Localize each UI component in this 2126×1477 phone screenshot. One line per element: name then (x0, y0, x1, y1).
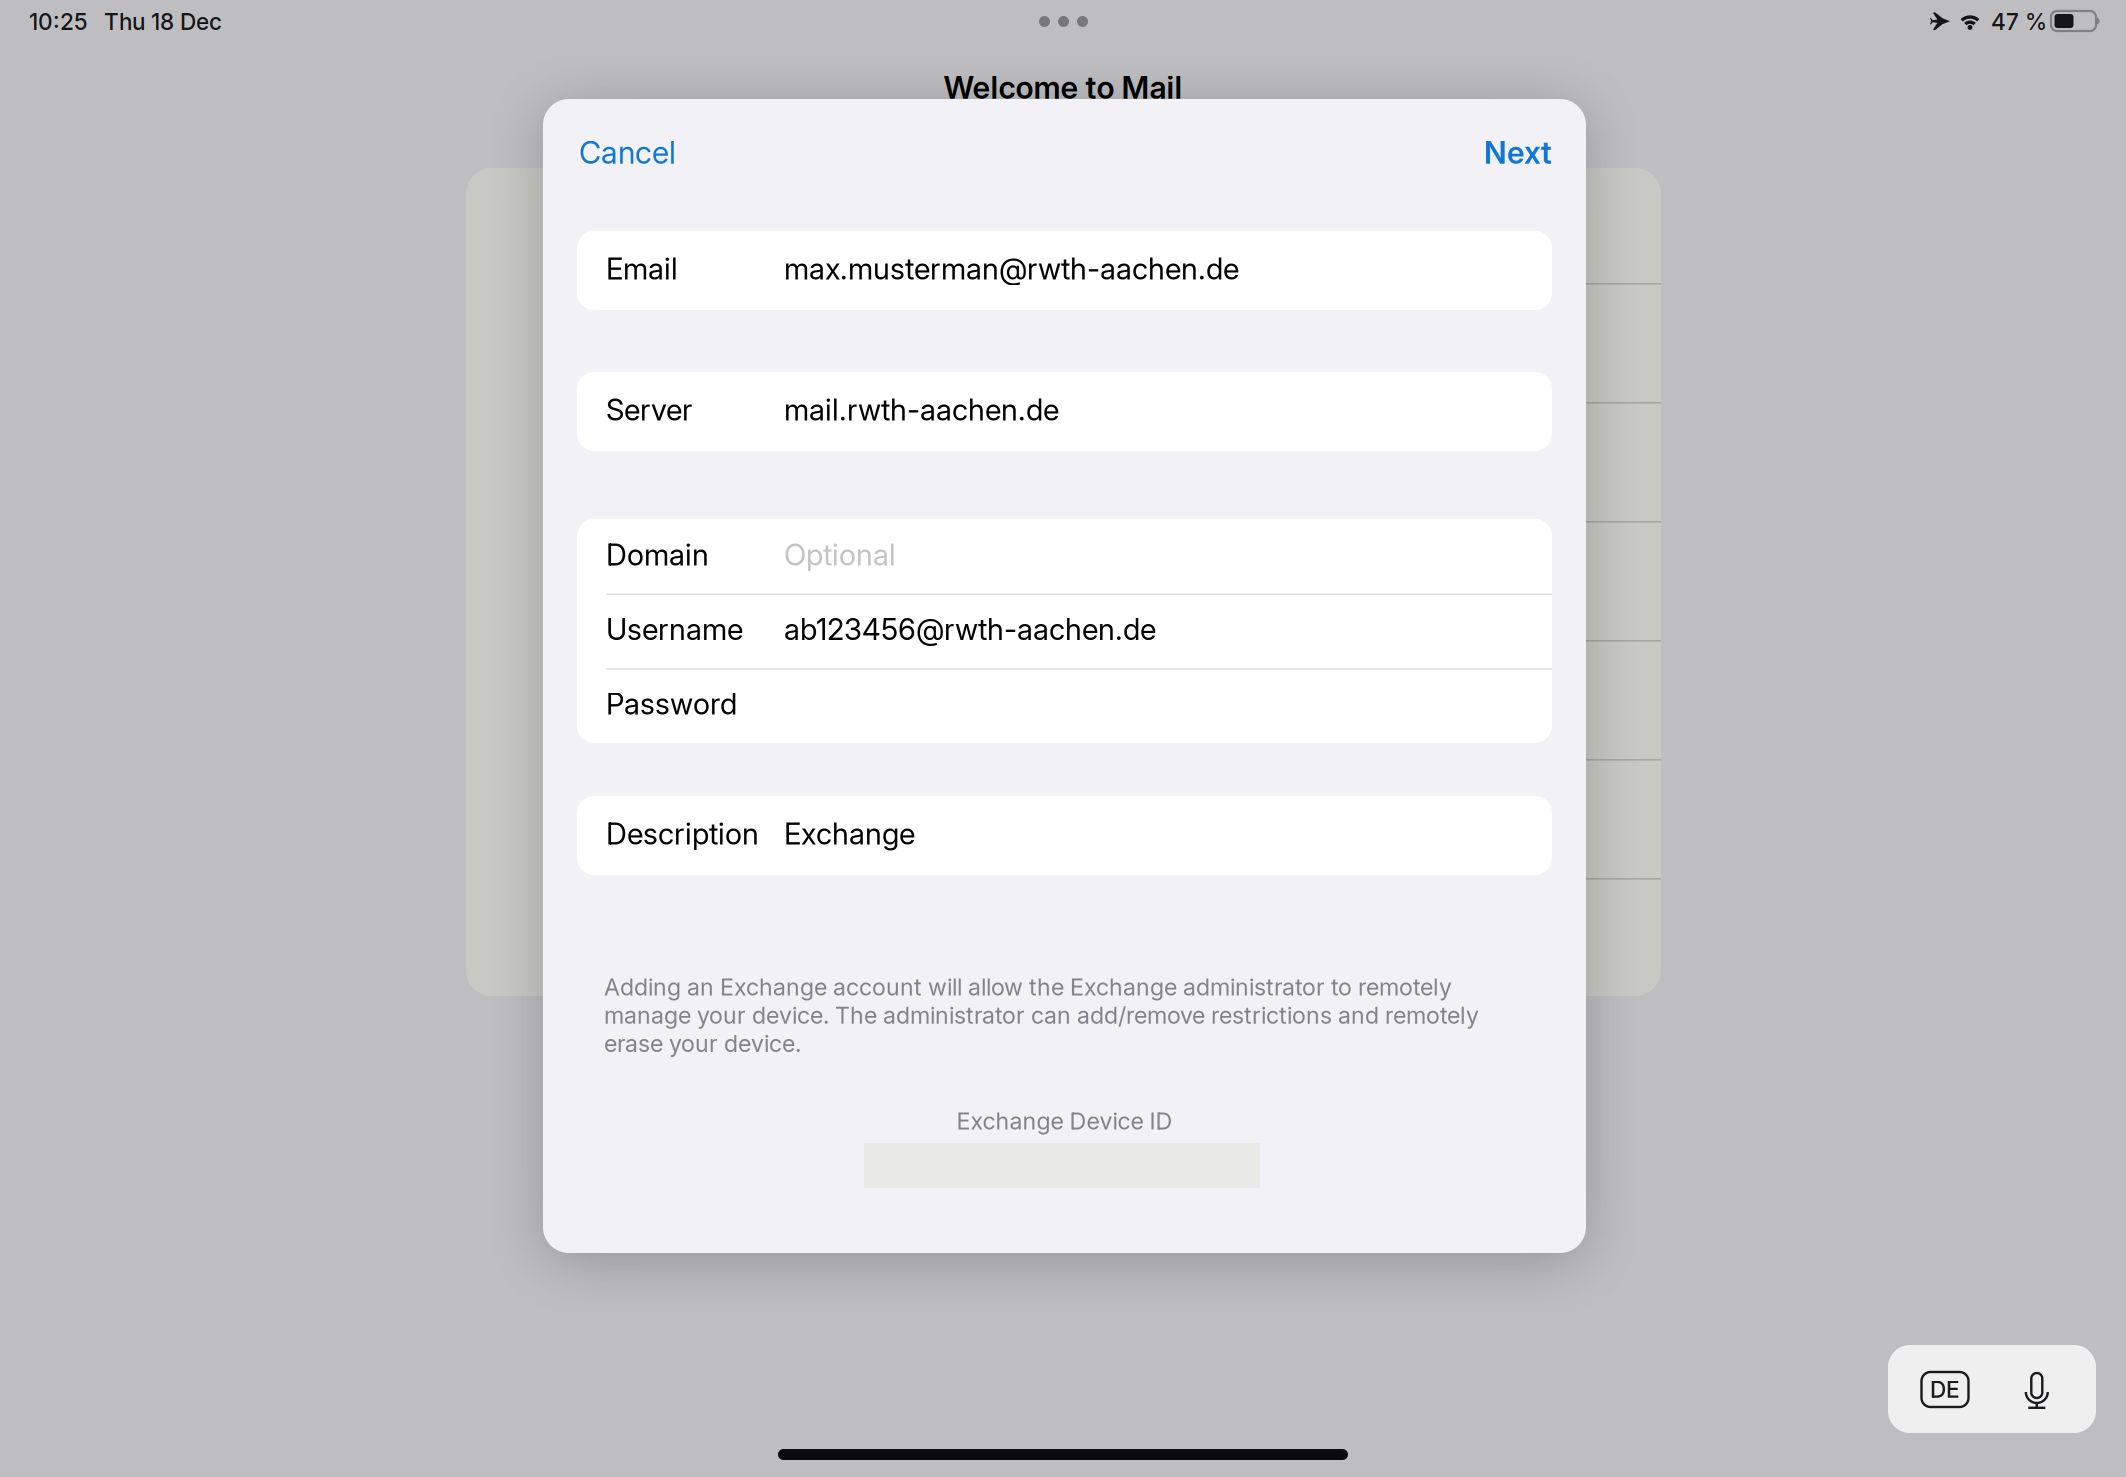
staticText: Password (606, 686, 737, 722)
staticText: mail.rwth-aachen.de (784, 392, 1059, 427)
staticText: Description (606, 816, 759, 851)
staticText: max.musterman@rwth-aachen.de (784, 251, 1239, 286)
button[interactable]: Domain (577, 519, 1552, 594)
staticText: Welcome to Mail (943, 69, 1182, 106)
staticText: Adding an Exchange account will allow th… (604, 973, 1479, 1058)
button[interactable]: Cancel (569, 124, 686, 181)
staticText: ab123456@rwth-aachen.de (784, 612, 1156, 647)
staticText: Cancel (579, 134, 676, 171)
button[interactable]: Username (577, 594, 1552, 668)
button[interactable]: Server (577, 372, 1552, 451)
staticText: Email (606, 251, 678, 286)
staticText: DE (1930, 1376, 1960, 1403)
staticText: Next (1484, 134, 1552, 171)
button[interactable]: Email (577, 231, 1552, 310)
button[interactable]: Dictation (2024, 1373, 2049, 1409)
button[interactable]: Keyboard language: German (1921, 1372, 1968, 1407)
staticText: Optional (784, 537, 896, 572)
staticText: Exchange Device ID (956, 1107, 1172, 1135)
staticText: 10:25 (29, 8, 88, 35)
button[interactable]: Description (577, 796, 1552, 875)
button[interactable]: Next (1474, 124, 1562, 181)
staticText: Username (606, 612, 743, 647)
staticText: Exchange (784, 816, 915, 851)
staticText: Domain (606, 537, 709, 572)
staticText: 47 % (1991, 8, 2047, 35)
button[interactable]: Password (577, 668, 1552, 743)
staticText: Server (606, 392, 692, 427)
staticText: Thu 18 Dec (104, 8, 222, 35)
